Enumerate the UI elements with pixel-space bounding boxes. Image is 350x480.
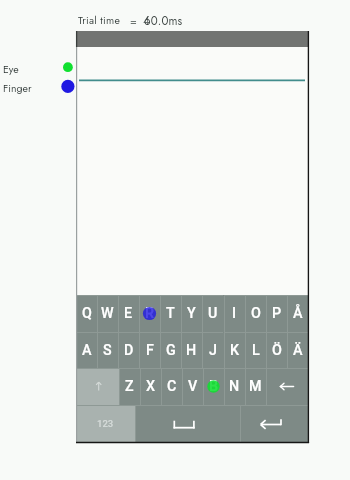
staticText: A	[82, 342, 92, 359]
button[interactable]: Ö	[266, 332, 287, 369]
button[interactable]: H	[181, 332, 202, 369]
staticText: C	[167, 378, 177, 395]
button[interactable]: N	[224, 368, 245, 405]
staticText: M	[249, 378, 262, 395]
staticText: H	[186, 342, 197, 359]
button[interactable]: L	[245, 332, 266, 369]
staticText: X	[146, 378, 156, 395]
button[interactable]: Z	[119, 368, 140, 405]
staticText: N	[229, 378, 240, 395]
staticText: Eye	[3, 62, 19, 77]
button[interactable]: G	[160, 332, 181, 369]
staticText: L	[252, 342, 260, 359]
button[interactable]: O	[245, 295, 266, 332]
button[interactable]: J	[202, 332, 223, 369]
staticText: F	[146, 342, 154, 359]
button[interactable]: E	[118, 295, 139, 332]
staticText: O	[251, 305, 261, 322]
staticText: I	[232, 305, 237, 322]
staticText: 123	[97, 418, 114, 429]
button[interactable]: K	[224, 332, 245, 369]
staticText: G	[166, 342, 176, 359]
button[interactable]: Space	[135, 405, 240, 442]
button[interactable]: Q	[76, 295, 97, 332]
button[interactable]: Y	[181, 295, 202, 332]
button[interactable]: B	[203, 368, 224, 405]
staticText: Finger	[3, 81, 32, 96]
staticText: B	[209, 378, 219, 395]
button[interactable]: Shift	[76, 368, 119, 405]
button[interactable]: R	[139, 295, 160, 332]
staticText: =	[130, 13, 137, 29]
staticText: P	[272, 305, 282, 322]
staticText: V	[188, 378, 198, 395]
button[interactable]: Enter	[240, 405, 308, 442]
staticText: W	[101, 305, 114, 322]
staticText: J	[209, 342, 217, 359]
button[interactable]: Backspace	[266, 368, 308, 405]
staticText: K	[230, 342, 240, 359]
staticText: Ä	[293, 342, 303, 359]
button[interactable]: A	[76, 332, 97, 369]
button[interactable]: 123	[76, 405, 135, 442]
staticText: Y	[187, 305, 196, 322]
button[interactable]: D	[118, 332, 139, 369]
button[interactable]: T	[160, 295, 181, 332]
button[interactable]: U	[202, 295, 223, 332]
button[interactable]: W	[97, 295, 118, 332]
button[interactable]: M	[245, 368, 266, 405]
button[interactable]: S	[97, 332, 118, 369]
staticText: Q	[82, 305, 92, 322]
button[interactable]: F	[139, 332, 160, 369]
button[interactable]: Ä	[287, 332, 308, 369]
staticText: Å	[293, 305, 303, 322]
staticText: S	[103, 342, 112, 359]
button[interactable]: X	[140, 368, 161, 405]
staticText: U	[208, 305, 218, 322]
staticText: D	[124, 342, 134, 359]
staticText: 60.0ms	[144, 13, 183, 30]
button[interactable]: V	[182, 368, 203, 405]
staticText: Trial time	[78, 13, 121, 28]
button[interactable]: I	[224, 295, 245, 332]
button[interactable]: Å	[287, 295, 308, 332]
button[interactable]: App bar	[76, 31, 308, 47]
staticText: R	[145, 305, 154, 322]
staticText: E	[124, 305, 133, 322]
staticText: Ö	[272, 342, 282, 359]
button[interactable]: C	[161, 368, 182, 405]
staticText: 4	[143, 13, 150, 30]
staticText: T	[166, 305, 175, 322]
staticText: Z	[125, 378, 134, 395]
button[interactable]: P	[266, 295, 287, 332]
